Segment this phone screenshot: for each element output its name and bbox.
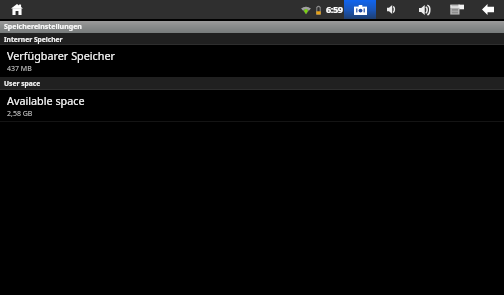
staticText: Speichereinstellungen: [4, 22, 82, 32]
staticText: 2,58 GB: [7, 109, 33, 119]
staticText: Verfügbarer Speicher: [7, 48, 115, 63]
button[interactable]: Available space: [0, 90, 504, 121]
staticText: 6:59: [326, 3, 343, 16]
button[interactable]: Back: [475, 0, 500, 19]
staticText: Available space: [7, 93, 85, 108]
button[interactable]: Verfügbarer Speicher: [0, 45, 504, 77]
staticText: 437 MB: [7, 64, 32, 74]
button[interactable]: Volume up: [412, 0, 436, 19]
staticText: User space: [4, 79, 41, 88]
button[interactable]: Recent apps: [444, 0, 470, 19]
button[interactable]: Home: [7, 0, 27, 19]
staticText: Interner Speicher: [4, 35, 63, 44]
button[interactable]: Screenshot: [344, 0, 376, 19]
button[interactable]: Volume down: [380, 0, 404, 19]
